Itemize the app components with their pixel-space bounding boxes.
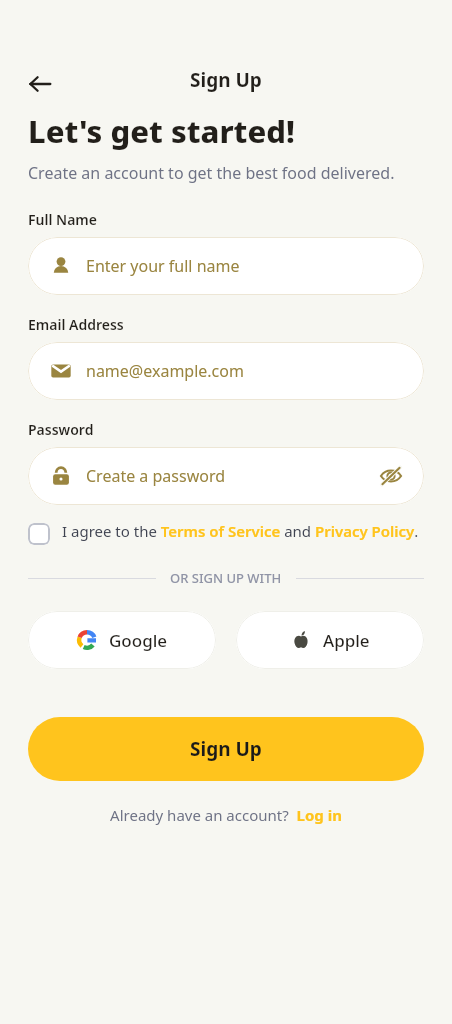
button[interactable]: Apple — [236, 611, 424, 669]
button[interactable]: Already have an account? Log in — [28, 805, 424, 825]
staticText: Password — [28, 420, 94, 439]
button[interactable]: I agree to the Terms of Service and Priv… — [62, 521, 419, 541]
button[interactable]: Sign Up — [28, 717, 424, 781]
button[interactable]: name@example.com — [28, 342, 424, 400]
staticText: Sign Up — [190, 67, 262, 93]
staticText: Enter your full name — [86, 255, 240, 277]
staticText: Sign Up — [190, 736, 262, 762]
button[interactable]: Enter your full name — [28, 237, 424, 295]
button[interactable]: Create a password — [28, 447, 424, 505]
staticText: Full Name — [28, 210, 97, 229]
staticText: Google — [109, 629, 168, 652]
staticText: Let's get started! — [28, 110, 295, 152]
staticText: Create a password — [86, 465, 226, 487]
staticText: Apple — [323, 629, 370, 652]
button[interactable]: Back — [18, 62, 62, 106]
staticText: Already have an account? Log in — [110, 805, 342, 825]
button[interactable]: Show password — [378, 463, 404, 489]
button[interactable]: Google — [28, 611, 216, 669]
staticText: name@example.com — [86, 360, 244, 382]
staticText: Create an account to get the best food d… — [28, 162, 395, 184]
staticText: OR SIGN UP WITH — [170, 569, 282, 587]
staticText: Email Address — [28, 315, 124, 334]
button[interactable]: Agree to terms — [28, 523, 50, 545]
